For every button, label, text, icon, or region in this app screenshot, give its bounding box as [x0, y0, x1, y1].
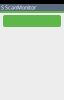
staticText: S [1, 4, 4, 11]
staticText: ScanMonitor [5, 4, 36, 11]
